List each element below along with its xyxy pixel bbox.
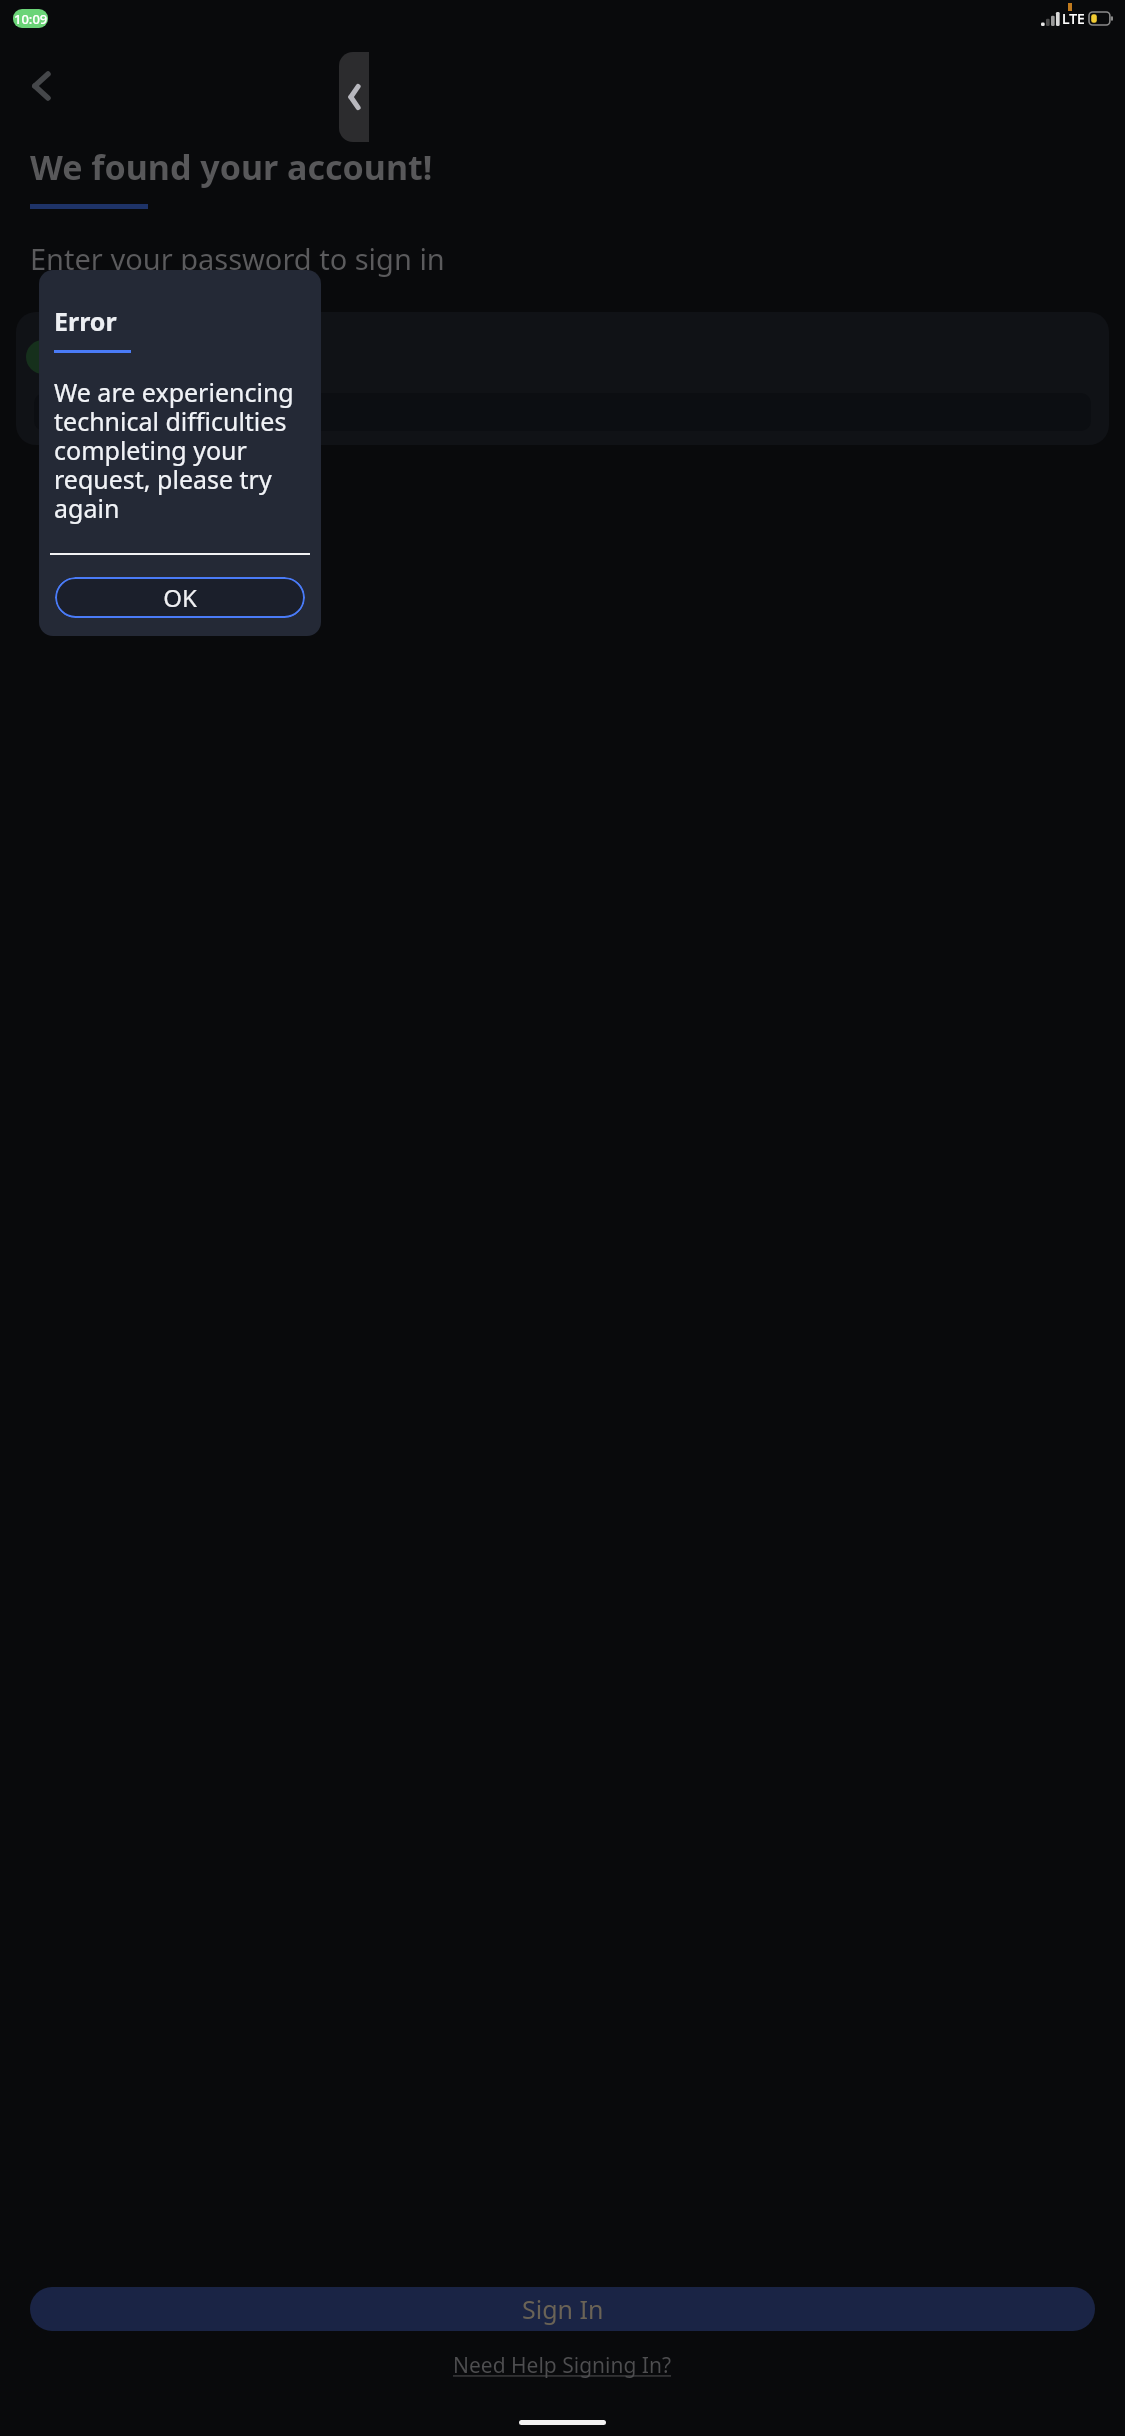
staticText: 10:09 [14, 10, 48, 28]
staticText: OK [163, 581, 197, 614]
staticText: Need Help Signing In? [453, 2351, 672, 2380]
button[interactable]: Open panel [339, 52, 369, 142]
staticText: We are experiencing technical difficulti… [54, 375, 311, 525]
staticText: Enter your password to sign in [30, 239, 445, 278]
button[interactable]: Back [14, 58, 70, 114]
button[interactable]: Need Help Signing In? [0, 2351, 1125, 2380]
button[interactable]: Sign In [30, 2287, 1095, 2331]
staticText: Error [54, 304, 117, 338]
button[interactable]: OK [55, 577, 305, 618]
staticText: We found your account! [30, 144, 433, 190]
staticText: LTE [1062, 9, 1085, 28]
staticText: Sign In [522, 2292, 604, 2326]
